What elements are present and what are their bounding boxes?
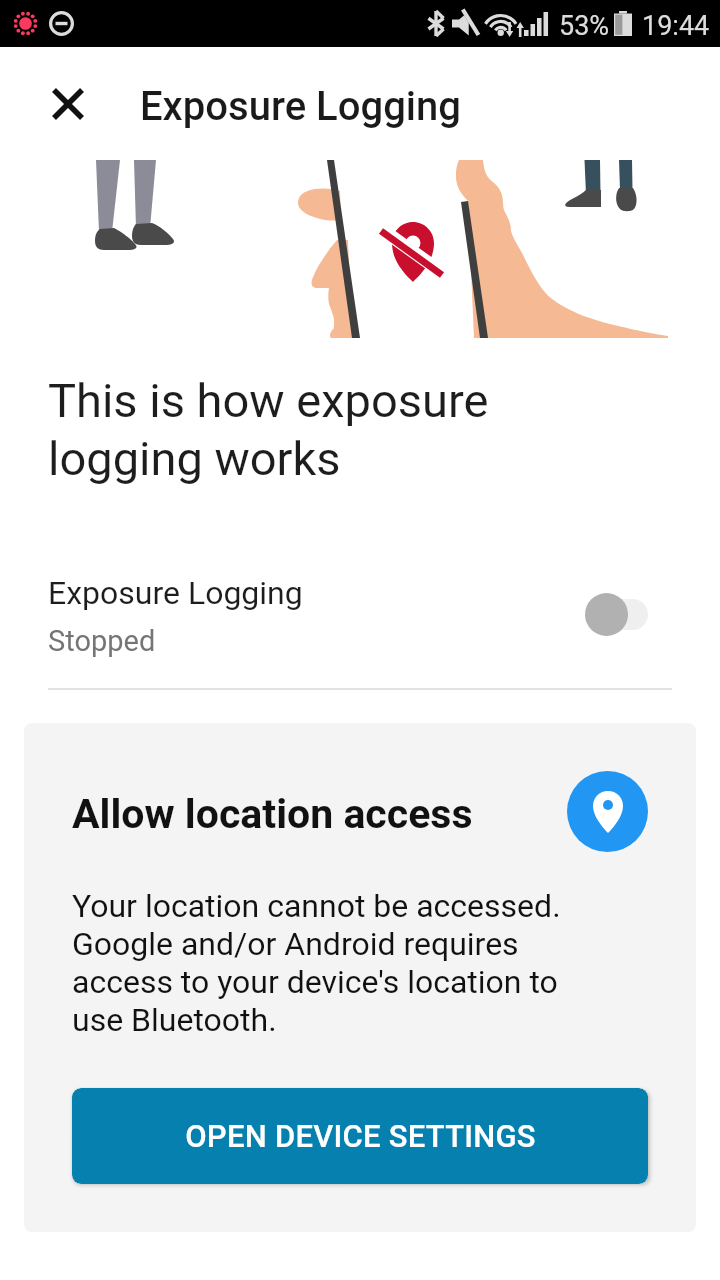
staticText: This is how exposure logging works — [48, 373, 489, 486]
staticText: Exposure Logging — [48, 574, 303, 612]
staticText: 19:44 — [642, 10, 710, 42]
button[interactable]: Exposure Logging — [0, 560, 720, 670]
staticText: Allow location access — [72, 790, 473, 838]
staticText: Exposure Logging — [140, 83, 461, 130]
staticText: Stopped — [48, 624, 156, 658]
button[interactable]: OPEN DEVICE SETTINGS — [72, 1088, 648, 1184]
button[interactable]: Close — [40, 76, 96, 132]
staticText: Your location cannot be accessed. Google… — [72, 887, 561, 1039]
staticText: 53% — [559, 10, 610, 42]
button[interactable]: Location — [567, 771, 648, 852]
staticText: OPEN DEVICE SETTINGS — [185, 1118, 536, 1154]
